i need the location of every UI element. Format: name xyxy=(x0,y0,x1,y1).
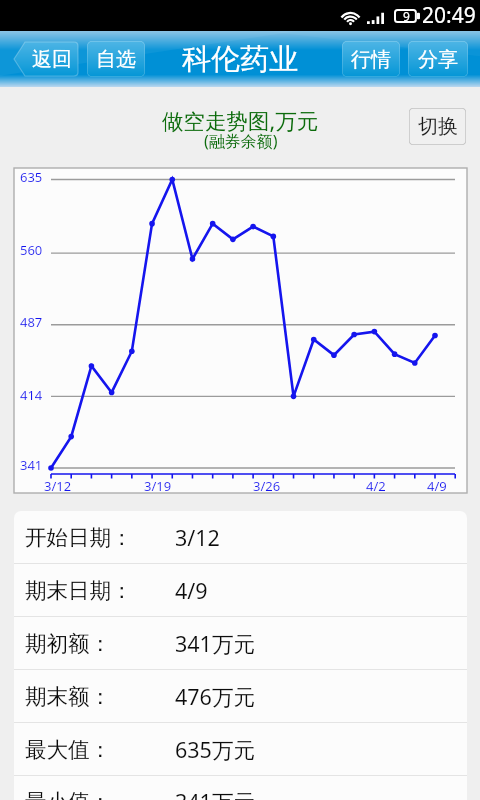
staticText: 487 xyxy=(20,313,43,331)
staticText: 9 xyxy=(403,8,410,24)
staticText: 341 xyxy=(20,456,43,474)
staticText: 期初额： xyxy=(25,630,111,657)
staticText: 3/26 xyxy=(253,477,281,495)
button[interactable]: 期初额： xyxy=(14,617,467,669)
staticText: 最大值： xyxy=(25,736,111,763)
staticText: 切换 xyxy=(418,114,458,139)
staticText: 4/9 xyxy=(175,576,208,605)
staticText: 341万元 xyxy=(175,787,255,800)
staticText: (融券余额) xyxy=(204,130,278,152)
button[interactable]: 分享 xyxy=(408,41,468,77)
staticText: 自选 xyxy=(96,47,136,72)
button[interactable]: 行情 xyxy=(342,41,400,77)
button[interactable]: 返回 xyxy=(13,41,79,77)
staticText: 414 xyxy=(20,386,43,404)
button[interactable]: 切换 xyxy=(409,108,466,145)
staticText: 341万元 xyxy=(175,629,255,658)
staticText: 635 xyxy=(20,168,43,186)
staticText: 4/2 xyxy=(366,477,386,495)
staticText: 科伦药业 xyxy=(182,41,298,78)
staticText: 635万元 xyxy=(175,735,255,764)
button[interactable]: 自选 xyxy=(87,41,145,77)
staticText: 3/12 xyxy=(44,477,72,495)
staticText: 3/12 xyxy=(175,523,220,552)
staticText: 开始日期： xyxy=(25,524,133,551)
staticText: 行情 xyxy=(351,47,391,72)
staticText: 3/19 xyxy=(144,477,172,495)
button[interactable]: 最小值： xyxy=(14,776,467,800)
staticText: 期末额： xyxy=(25,683,111,710)
staticText: 476万元 xyxy=(175,682,255,711)
button[interactable]: 期末额： xyxy=(14,670,467,722)
staticText: 560 xyxy=(20,241,43,259)
staticText: 期末日期： xyxy=(25,577,133,604)
staticText: 做空走势图,万元 xyxy=(162,106,319,135)
staticText: 返回 xyxy=(32,47,72,72)
staticText: 4/9 xyxy=(427,477,447,495)
staticText: 20:49 xyxy=(422,1,476,30)
button[interactable]: 最大值： xyxy=(14,723,467,775)
staticText: 最小值： xyxy=(25,788,111,800)
staticText: 分享 xyxy=(418,47,458,72)
button[interactable]: 期末日期： xyxy=(14,564,467,616)
button[interactable]: 开始日期： xyxy=(14,511,467,563)
